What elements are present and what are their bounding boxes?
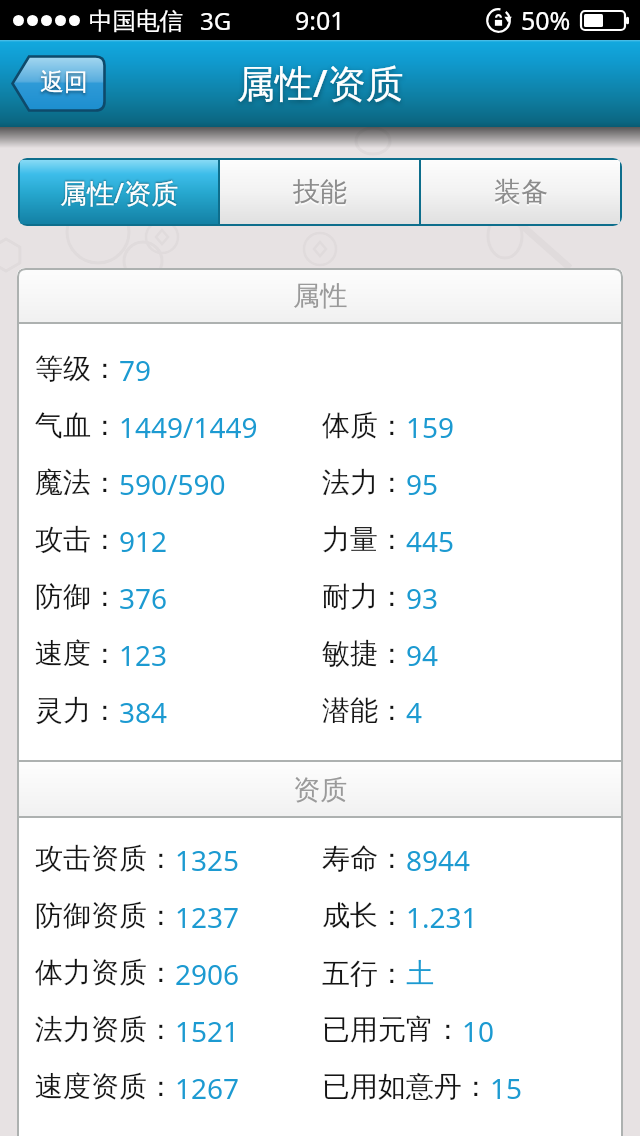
staticText: 2906 (175, 955, 240, 993)
staticText: 1267 (175, 1069, 240, 1107)
staticText: 攻击资质： (35, 841, 175, 876)
staticText: 属性 (293, 279, 347, 313)
staticText: 速度： (35, 636, 119, 671)
staticText: 590/590 (119, 465, 226, 503)
staticText: 1325 (175, 841, 240, 879)
staticText: 防御资质： (35, 898, 175, 933)
staticText: 返回 (40, 67, 88, 97)
staticText: 耐力： (322, 579, 406, 614)
staticText: 体质： (322, 408, 406, 443)
button[interactable]: 装备 (421, 160, 620, 224)
staticText: 912 (119, 522, 168, 560)
staticText: 1449/1449 (119, 408, 258, 446)
staticText: 79 (119, 351, 152, 389)
staticText: 3G (200, 4, 232, 37)
staticText: 技能 (293, 175, 347, 209)
staticText: 资质 (293, 773, 347, 807)
staticText: 法力： (322, 465, 406, 500)
staticText: 93 (406, 579, 439, 617)
staticText: 10 (462, 1012, 495, 1050)
staticText: 装备 (494, 175, 548, 209)
button[interactable]: 属性/资质 (20, 160, 218, 224)
staticText: 体力资质： (35, 955, 175, 990)
staticText: 气血： (35, 408, 119, 443)
staticText: 属性/资质 (237, 56, 404, 108)
staticText: 384 (119, 693, 168, 731)
staticText: 中国电信 (89, 6, 183, 36)
staticText: 防御： (35, 579, 119, 614)
staticText: 灵力： (35, 693, 119, 728)
staticText: 土 (406, 956, 434, 991)
staticText: 速度资质： (35, 1069, 175, 1104)
staticText: 成长： (322, 898, 406, 933)
staticText: 15 (490, 1069, 523, 1107)
staticText: 94 (406, 636, 439, 674)
staticText: 五行： (322, 956, 406, 991)
staticText: 50% (521, 3, 571, 37)
staticText: 445 (406, 522, 455, 560)
staticText: 寿命： (322, 841, 406, 876)
staticText: 力量： (322, 522, 406, 557)
button[interactable]: 技能 (220, 160, 419, 224)
button[interactable]: 返回 (11, 55, 106, 112)
staticText: 9:01 (295, 3, 345, 37)
staticText: 1.231 (406, 898, 478, 936)
staticText: 等级： (35, 351, 119, 386)
staticText: 已用如意丹： (322, 1069, 490, 1104)
staticText: 法力资质： (35, 1012, 175, 1047)
staticText: 1237 (175, 898, 240, 936)
staticText: 已用元宵： (322, 1012, 462, 1047)
staticText: 123 (119, 636, 168, 674)
staticText: 376 (119, 579, 168, 617)
staticText: 1521 (175, 1012, 240, 1050)
staticText: 159 (406, 408, 455, 446)
staticText: 敏捷： (322, 636, 406, 671)
staticText: 95 (406, 465, 439, 503)
staticText: 属性/资质 (60, 174, 179, 211)
staticText: 魔法： (35, 465, 119, 500)
staticText: 4 (406, 693, 423, 731)
staticText: 攻击： (35, 522, 119, 557)
staticText: 8944 (406, 841, 471, 879)
staticText: 潜能： (322, 693, 406, 728)
